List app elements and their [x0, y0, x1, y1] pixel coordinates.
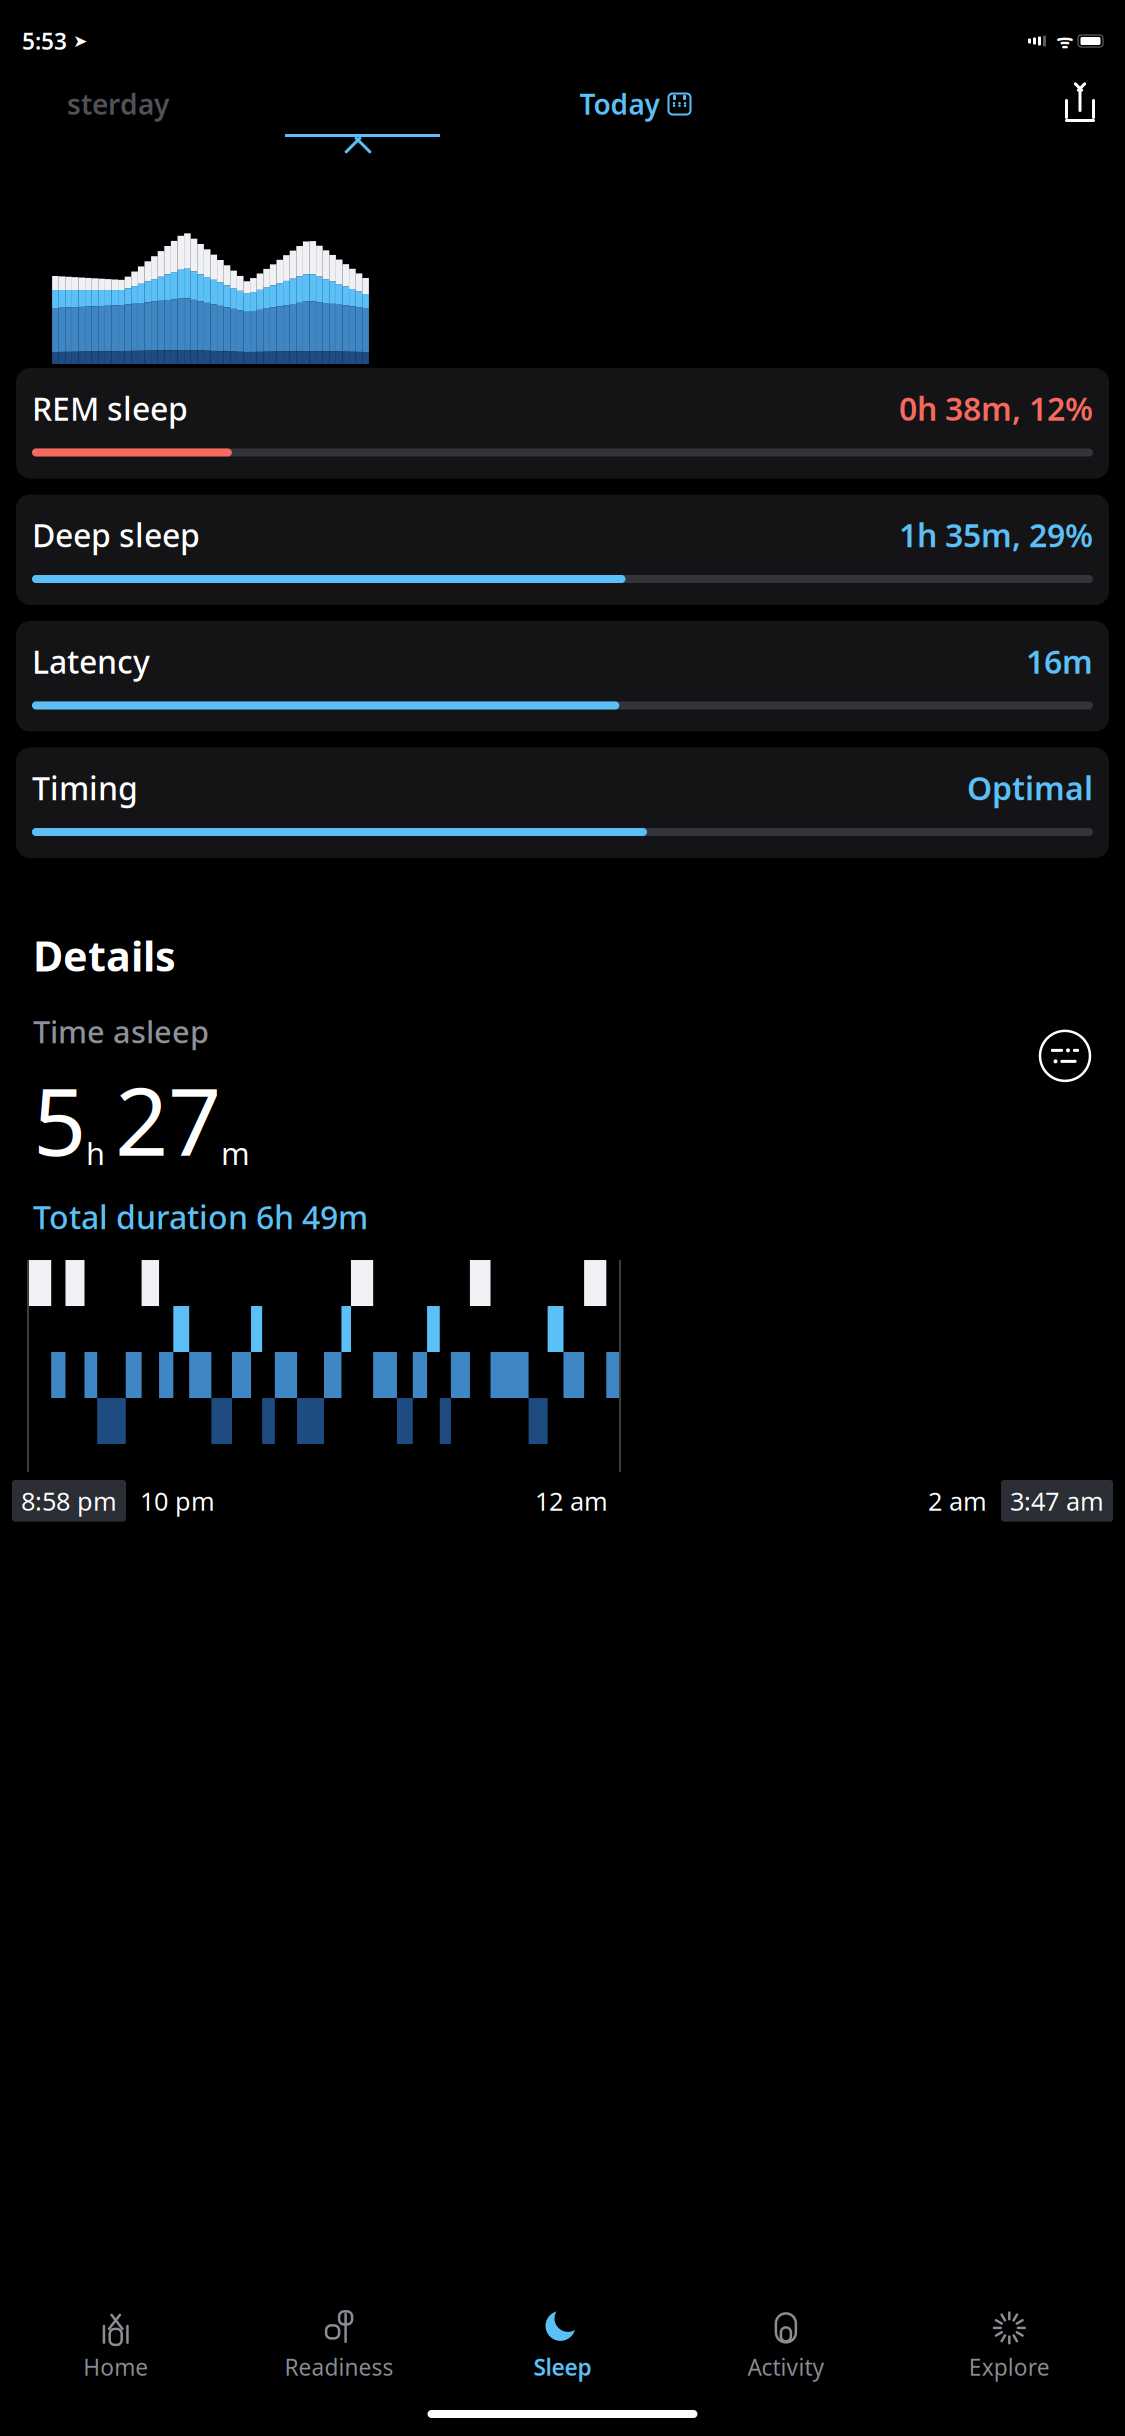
staticText: Optimal [967, 766, 1093, 809]
staticText: 5:53 [22, 26, 67, 56]
staticText: ᯤ [1046, 29, 1078, 53]
staticText: ➤ [67, 31, 88, 51]
button[interactable]: Readiness [227, 2305, 451, 2388]
staticText: REM sleep [32, 387, 188, 429]
staticText: Total duration 6h 49m [33, 1195, 368, 1238]
staticText: Deep sleep [32, 513, 200, 556]
staticText: Readiness [285, 2352, 394, 2382]
button[interactable]: Timing [16, 747, 1109, 858]
staticText: 0h 38m, 12% [899, 387, 1093, 429]
button[interactable]: Today [535, 85, 735, 123]
staticText: 10 pm [140, 1484, 215, 1518]
staticText: 12 am [535, 1484, 608, 1518]
staticText: Today [579, 85, 659, 123]
staticText: 2 am [928, 1484, 987, 1518]
staticText: sterday [67, 85, 169, 123]
staticText: h [86, 1133, 105, 1173]
button[interactable]: Deep sleep [16, 494, 1109, 605]
button[interactable]: Home [4, 2305, 227, 2388]
staticText: 8:58 pm [21, 1484, 117, 1518]
button[interactable]: Adjust sleep data [1038, 1029, 1092, 1083]
staticText: 16m [1026, 640, 1093, 682]
staticText: m [221, 1133, 250, 1173]
staticText: 5 [33, 1058, 86, 1181]
button[interactable]: Activity [674, 2305, 898, 2388]
staticText: 3:47 am [1010, 1484, 1104, 1518]
button[interactable]: Explore [898, 2305, 1121, 2388]
button[interactable]: Sleep [451, 2305, 674, 2388]
staticText: Time asleep [33, 1011, 209, 1052]
staticText: Activity [747, 2352, 824, 2382]
staticText: Sleep [533, 2352, 591, 2382]
button[interactable]: REM sleep [16, 368, 1109, 478]
button[interactable]: Share [1053, 77, 1107, 131]
button[interactable]: Latency [16, 621, 1109, 731]
staticText: Explore [969, 2352, 1050, 2382]
staticText: 27 [115, 1058, 221, 1181]
button[interactable]: sterday [18, 85, 218, 123]
staticText: 1h 35m, 29% [899, 513, 1093, 556]
staticText: Timing [32, 766, 138, 809]
staticText: Details [33, 928, 176, 983]
staticText: Latency [32, 640, 150, 682]
staticText: Home [83, 2352, 148, 2382]
